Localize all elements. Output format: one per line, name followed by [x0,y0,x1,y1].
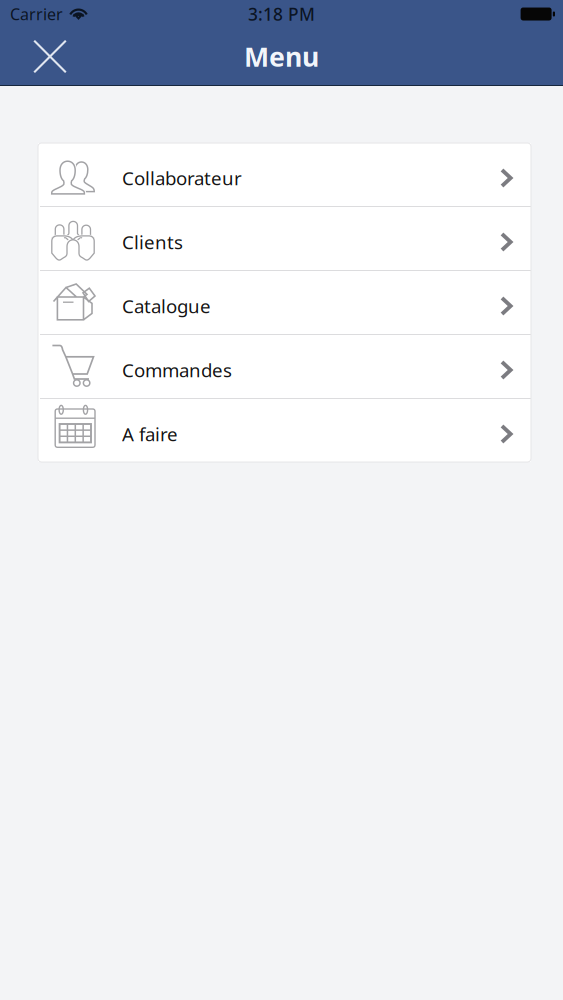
staticText: Commandes [122,358,232,382]
staticText: Carrier [10,3,63,25]
button[interactable]: Collaborateur [38,143,531,206]
staticText: A faire [122,422,178,446]
staticText: Menu [244,39,319,74]
button[interactable]: Close [0,28,83,85]
button[interactable]: A faire [38,399,531,462]
staticText: Clients [122,230,183,254]
button[interactable]: Commandes [38,335,531,398]
staticText: Catalogue [122,294,211,318]
button[interactable]: Catalogue [38,271,531,334]
staticText: 3:18 PM [248,2,315,25]
button[interactable]: Clients [38,207,531,270]
staticText: Collaborateur [122,166,242,190]
